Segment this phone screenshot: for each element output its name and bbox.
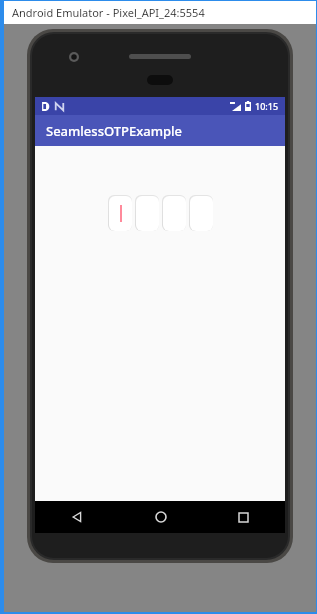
button[interactable]: Recent apps bbox=[202, 501, 285, 533]
staticText: 10:15 bbox=[255, 100, 279, 112]
button[interactable]: OTP digit bbox=[188, 194, 214, 232]
button[interactable]: SeamlessOTPExample bbox=[35, 115, 285, 146]
button[interactable]: Back bbox=[35, 501, 119, 533]
button[interactable]: OTP digit bbox=[107, 194, 133, 232]
staticText: SeamlessOTPExample bbox=[46, 122, 183, 140]
staticText: Android Emulator - Pixel_API_24:5554 bbox=[12, 5, 205, 20]
button[interactable]: Home bbox=[119, 501, 202, 533]
button[interactable]: OTP digit bbox=[161, 194, 187, 232]
button[interactable]: OTP digit bbox=[134, 194, 160, 232]
